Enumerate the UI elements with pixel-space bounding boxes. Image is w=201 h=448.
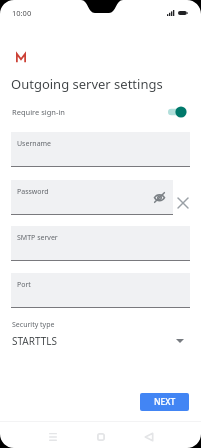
staticText: Username (17, 139, 52, 149)
button[interactable]: Username (11, 132, 190, 167)
button[interactable]: Recent apps (39, 425, 66, 448)
button[interactable]: Show password (152, 190, 167, 205)
button[interactable]: Password (11, 180, 173, 215)
button[interactable]: Require sign-in toggle (168, 105, 189, 119)
staticText: Password (17, 187, 49, 197)
staticText: 10:00 (12, 8, 32, 18)
staticText: Port (17, 280, 31, 290)
staticText: Security type (12, 320, 55, 330)
staticText: STARTTLS (12, 334, 58, 348)
button[interactable]: Clear password (174, 186, 191, 220)
button[interactable]: NEXT (140, 393, 189, 411)
button[interactable]: Require sign-in (0, 103, 201, 120)
button[interactable]: SMTP server (11, 226, 190, 261)
staticText: SMTP server (17, 233, 58, 243)
button[interactable]: Port (11, 273, 190, 308)
staticText: NEXT (154, 396, 176, 408)
staticText: Outgoing server settings (11, 75, 163, 93)
button[interactable]: Back (135, 425, 162, 448)
button[interactable]: Security type (0, 318, 201, 350)
staticText: Require sign-in (12, 107, 65, 117)
button[interactable]: Home (87, 425, 114, 448)
